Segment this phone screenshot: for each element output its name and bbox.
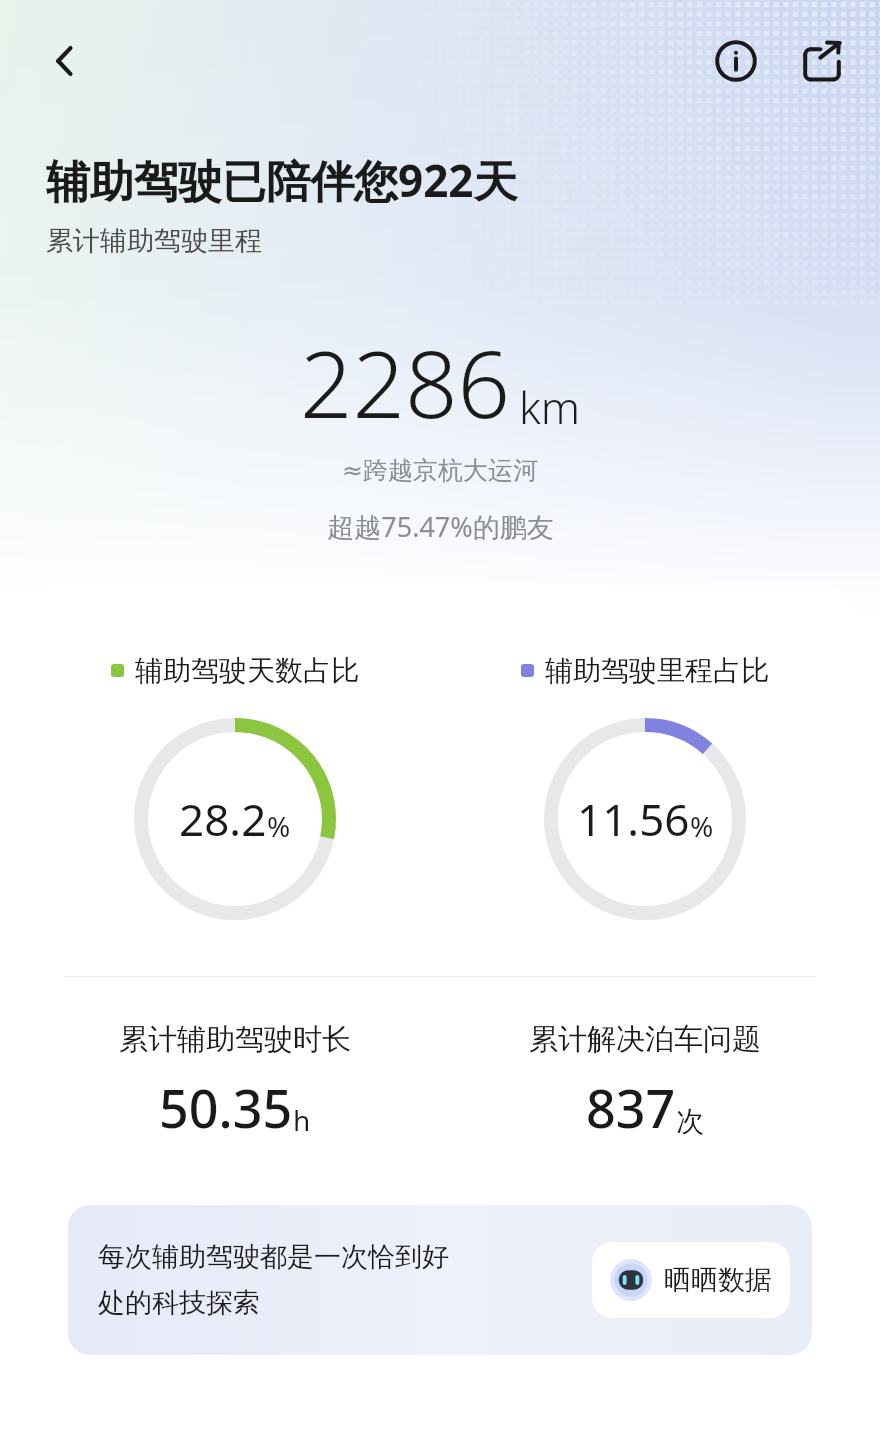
staticText: % xyxy=(690,807,714,845)
staticText: 累计辅助驾驶时长 xyxy=(119,1021,351,1058)
staticText: ≈跨越京杭大运河 xyxy=(342,455,538,486)
staticText: 累计辅助驾驶里程 xyxy=(46,224,262,258)
staticText: h xyxy=(293,1101,311,1139)
staticText: km xyxy=(519,377,581,437)
staticText: 辅助驾驶已陪伴您922天 xyxy=(46,150,518,210)
staticText: 辅助驾驶天数占比 xyxy=(135,653,359,688)
staticText: 超越75.47%的鹏友 xyxy=(327,508,554,545)
staticText: 11.56 xyxy=(577,789,690,849)
staticText: 次 xyxy=(676,1104,704,1139)
staticText: 837 xyxy=(586,1072,676,1143)
button[interactable]: Info xyxy=(704,29,768,93)
staticText: 50.35 xyxy=(159,1072,293,1143)
button[interactable]: 晒晒数据 xyxy=(592,1242,790,1318)
button[interactable]: 每次辅助驾驶都是一次恰到好 xyxy=(68,1205,812,1355)
staticText: 28.2 xyxy=(179,789,267,849)
staticText: 辅助驾驶里程占比 xyxy=(545,653,769,688)
staticText: 2286 xyxy=(300,320,511,445)
staticText: % xyxy=(267,807,291,845)
button[interactable]: Share xyxy=(790,29,854,93)
staticText: 累计解决泊车问题 xyxy=(529,1021,761,1058)
staticText: 晒晒数据 xyxy=(664,1263,772,1297)
staticText: 每次辅助驾驶都是一次恰到好 xyxy=(98,1240,449,1274)
button[interactable]: Back xyxy=(30,26,100,96)
staticText: 处的科技探索 xyxy=(98,1286,260,1320)
